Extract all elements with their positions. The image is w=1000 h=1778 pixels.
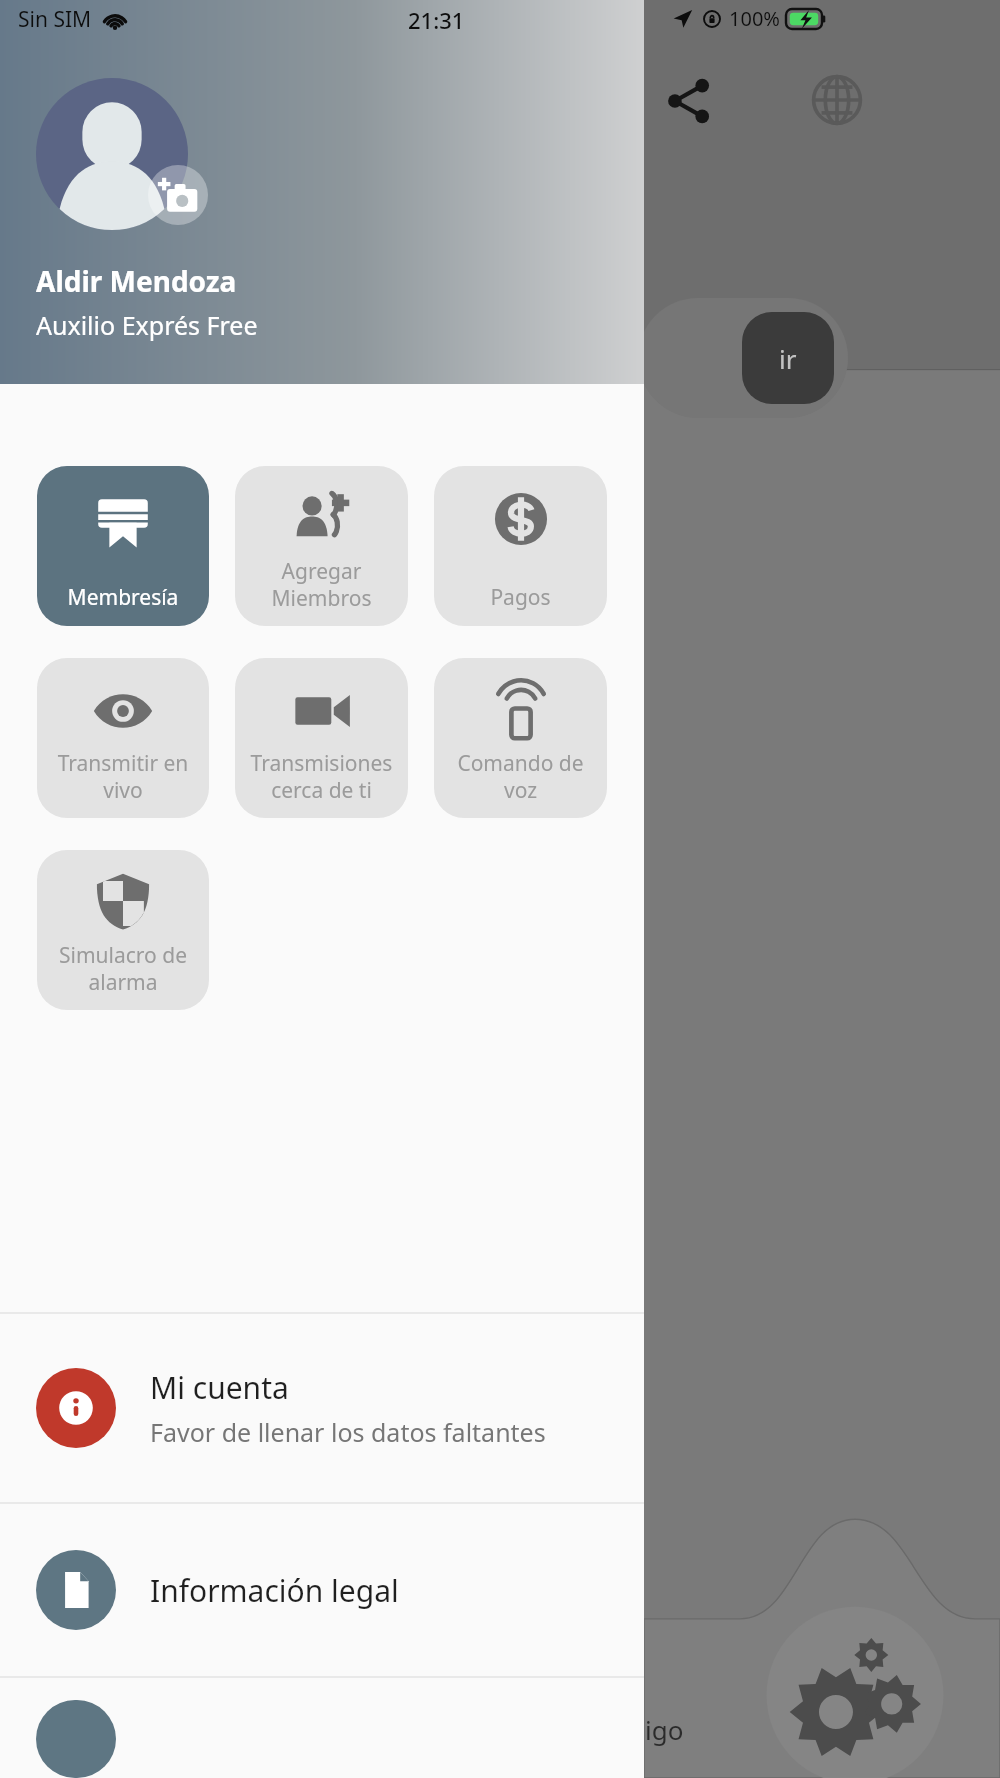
staticText: Comando de voz (438, 749, 603, 804)
staticText: Pagos (438, 583, 603, 612)
button[interactable]: Transmitir en vivo (37, 658, 209, 818)
staticText: Información legal (150, 1570, 399, 1611)
staticText: Transmisiones cerca de ti (239, 749, 404, 804)
button[interactable]: Configuración (770, 1608, 940, 1778)
button[interactable] (0, 1678, 644, 1778)
staticText: 100% (729, 5, 780, 32)
staticText: Membresía (41, 583, 205, 612)
button[interactable]: Pagos (434, 466, 607, 626)
button[interactable]: Comando de voz (434, 658, 607, 818)
staticText: Aldir Mendoza (36, 262, 237, 300)
staticText: Favor de llenar los datos faltantes (150, 1415, 546, 1449)
button[interactable]: Compartir (650, 62, 728, 140)
staticText: Transmitir en vivo (41, 749, 205, 804)
button[interactable]: ir (638, 298, 848, 418)
button[interactable]: Mi cuenta (0, 1314, 644, 1502)
button[interactable]: Simulacro de alarma (37, 850, 209, 1010)
staticText: Auxilio Exprés Free (36, 308, 258, 342)
staticText: igo (645, 1712, 684, 1747)
staticText: 21:31 (408, 5, 465, 35)
button[interactable]: Agregar Miembros (235, 466, 408, 626)
button[interactable]: Membresía (37, 466, 209, 626)
staticText: Sin SIM (18, 5, 92, 34)
button[interactable]: Foto de perfil (36, 78, 188, 230)
staticText: Mi cuenta (150, 1367, 289, 1408)
staticText: Simulacro de alarma (41, 941, 205, 996)
staticText: ir (779, 341, 797, 376)
button[interactable]: Idioma (795, 58, 879, 142)
button[interactable]: Información legal (0, 1504, 644, 1676)
button[interactable]: Transmisiones cerca de ti (235, 658, 408, 818)
staticText: Agregar Miembros (239, 557, 404, 612)
